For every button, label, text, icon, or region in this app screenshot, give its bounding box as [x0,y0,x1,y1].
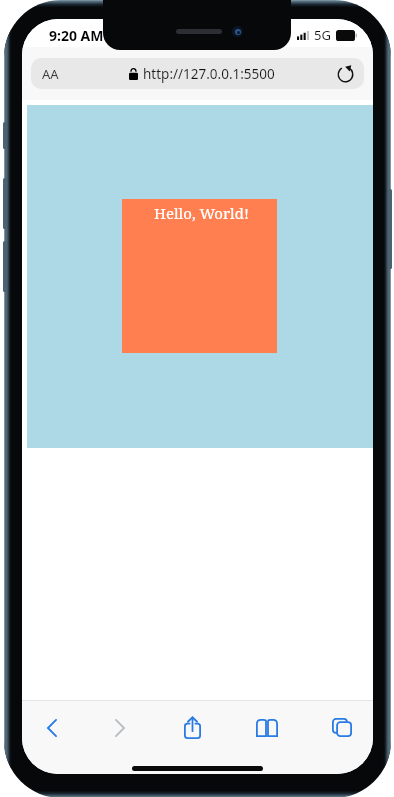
button[interactable]: Bookmarks [241,701,293,754]
button[interactable]: Tabs [316,701,368,754]
button[interactable]: AA [42,65,59,83]
staticText: Hello, World! [154,203,249,223]
staticText: http://127.0.0.1:5500 [143,65,275,83]
button[interactable]: Back [26,701,78,754]
staticText: 5G [314,26,331,44]
button[interactable]: Forward [94,701,146,754]
staticText: 9:20 AM [49,26,104,45]
button[interactable]: Share [166,701,218,754]
button[interactable]: Reload [334,63,356,85]
